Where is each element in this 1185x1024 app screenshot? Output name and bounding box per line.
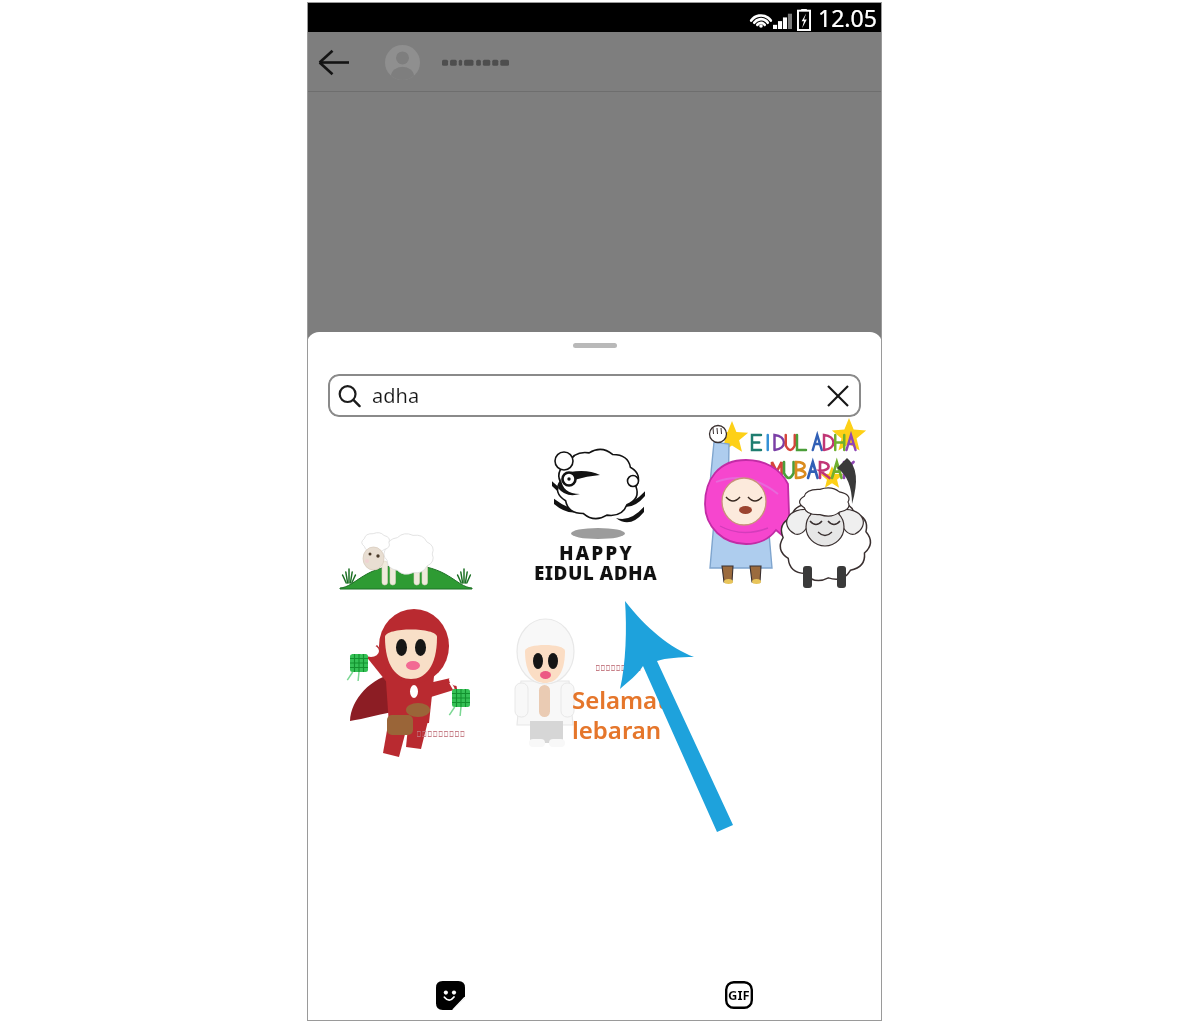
button[interactable]: Clear search	[819, 377, 857, 415]
staticText: Selamat	[572, 683, 667, 716]
staticText: GIF	[728, 986, 750, 1004]
button[interactable]: adha	[328, 374, 861, 417]
staticText: lebaran	[572, 713, 662, 746]
staticText: adha	[372, 382, 420, 409]
button[interactable]: Back	[311, 39, 357, 85]
button[interactable]: Stickers	[425, 970, 475, 1020]
staticText: 12.05	[818, 2, 877, 32]
staticText: HAPPY	[559, 540, 634, 566]
staticText: EIDUL ADHA	[534, 560, 658, 586]
button[interactable]: Profile picture	[385, 45, 420, 80]
button[interactable]: GIF	[714, 970, 764, 1020]
